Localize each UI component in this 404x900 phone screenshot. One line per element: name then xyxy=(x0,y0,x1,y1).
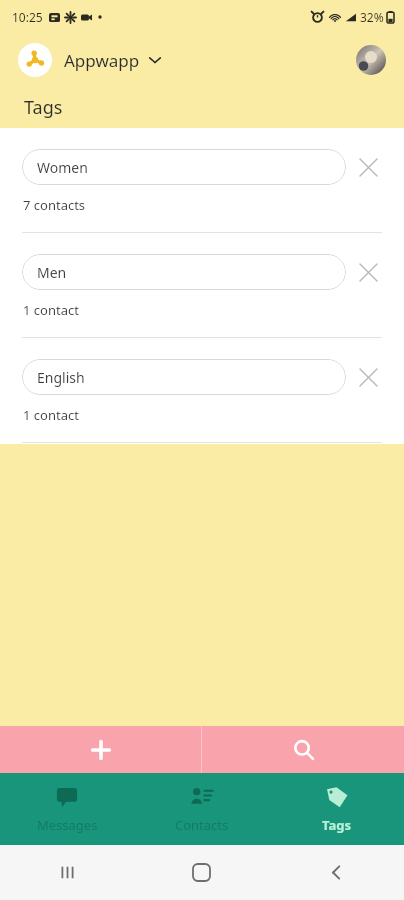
button[interactable]: English xyxy=(22,359,346,395)
staticText: 1 contact xyxy=(23,406,79,424)
button[interactable]: Home xyxy=(134,845,269,900)
staticText: Contacts xyxy=(175,816,229,834)
button[interactable]: Tags xyxy=(269,773,404,845)
staticText: Appwapp xyxy=(64,49,140,72)
staticText: Tags xyxy=(24,95,63,120)
staticText: Messages xyxy=(37,816,98,834)
button[interactable]: Men xyxy=(22,254,346,290)
button[interactable]: Back xyxy=(269,845,404,900)
staticText: 10:25 xyxy=(12,9,43,25)
button[interactable]: Search xyxy=(202,726,404,773)
staticText: 32% xyxy=(360,9,384,25)
staticText: 1 contact xyxy=(23,301,79,319)
staticText: Tags xyxy=(322,816,351,834)
button[interactable]: Appwapp xyxy=(18,43,162,77)
button[interactable]: Contacts xyxy=(134,773,269,845)
button[interactable]: Profile xyxy=(356,45,386,75)
button[interactable]: Messages xyxy=(0,773,134,845)
staticText: Men xyxy=(37,263,67,282)
button[interactable]: Add tag xyxy=(0,726,201,773)
button[interactable]: Recent apps xyxy=(0,845,134,900)
button[interactable]: Remove Men tag xyxy=(346,250,390,294)
button[interactable]: Women xyxy=(22,149,346,185)
staticText: Women xyxy=(37,158,88,177)
staticText: English xyxy=(37,368,85,387)
staticText: 7 contacts xyxy=(23,196,86,214)
button[interactable]: Remove Women tag xyxy=(346,145,390,189)
button[interactable]: Remove English tag xyxy=(346,355,390,399)
